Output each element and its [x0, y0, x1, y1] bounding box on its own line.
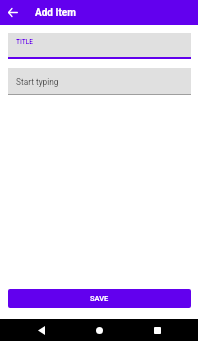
- button[interactable]: Navigate up: [0, 0, 25, 25]
- button[interactable]: Recent apps: [141, 319, 173, 341]
- button[interactable]: TITLE: [8, 33, 191, 59]
- button[interactable]: Back: [25, 319, 57, 341]
- button[interactable]: Start typing: [8, 68, 191, 95]
- staticText: Add Item: [35, 7, 76, 19]
- button[interactable]: SAVE: [8, 289, 191, 308]
- staticText: TITLE: [16, 38, 33, 46]
- staticText: Start typing: [16, 77, 59, 87]
- button[interactable]: Home: [83, 319, 115, 341]
- staticText: SAVE: [90, 294, 109, 303]
